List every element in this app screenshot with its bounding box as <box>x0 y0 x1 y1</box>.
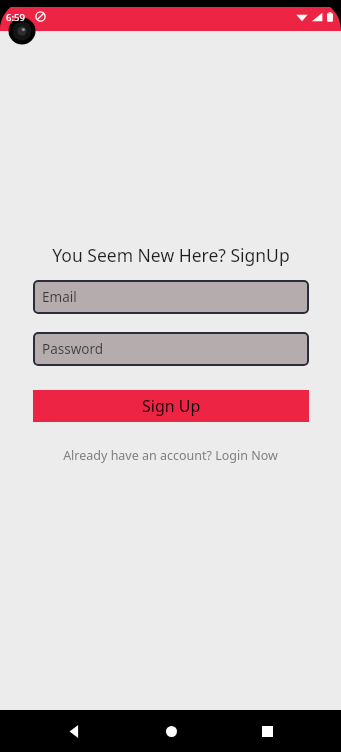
staticText: 6:59 <box>6 11 25 24</box>
button[interactable]: Password <box>33 332 309 366</box>
staticText: Sign Up <box>142 395 201 417</box>
button[interactable]: Home <box>148 710 194 752</box>
button[interactable]: Sign Up <box>33 390 309 422</box>
button[interactable]: Recent apps <box>244 710 290 752</box>
staticText: You Seem New Here? SignUp <box>52 243 290 267</box>
staticText: Already have an account? Login Now <box>63 447 278 464</box>
button[interactable]: Already have an account? Login Now <box>57 445 284 466</box>
other: Battery <box>326 11 334 23</box>
staticText: Email <box>42 288 77 306</box>
staticText: Password <box>42 340 104 358</box>
other: Signal strength <box>311 11 323 23</box>
button[interactable]: Back <box>51 710 97 752</box>
button[interactable]: Email <box>33 280 309 314</box>
other: Wi-Fi <box>296 11 308 23</box>
